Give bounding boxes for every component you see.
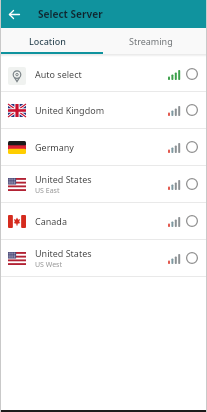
button[interactable]: United States [0,240,207,276]
staticText: Auto select [35,68,82,80]
button[interactable]: Canada [0,203,207,239]
button[interactable]: Auto select [0,57,207,91]
staticText: United States [35,173,92,185]
staticText: Streaming [129,35,173,47]
staticText: Canada [35,215,67,227]
staticText: Germany [35,141,74,153]
staticText: US West [35,260,62,270]
button[interactable]: United States [0,166,207,202]
button[interactable] [0,0,28,28]
staticText: Location [29,35,66,47]
button[interactable]: Germany [0,129,207,165]
staticText: United Kingdom [35,104,105,116]
staticText: United States [35,247,92,259]
staticText: US East [35,186,60,196]
button[interactable]: United Kingdom [0,92,207,128]
button[interactable]: Select Server [0,0,207,28]
staticText: Select Server [38,7,103,21]
button[interactable]: Location [0,28,103,54]
button[interactable]: Streaming [103,28,207,54]
